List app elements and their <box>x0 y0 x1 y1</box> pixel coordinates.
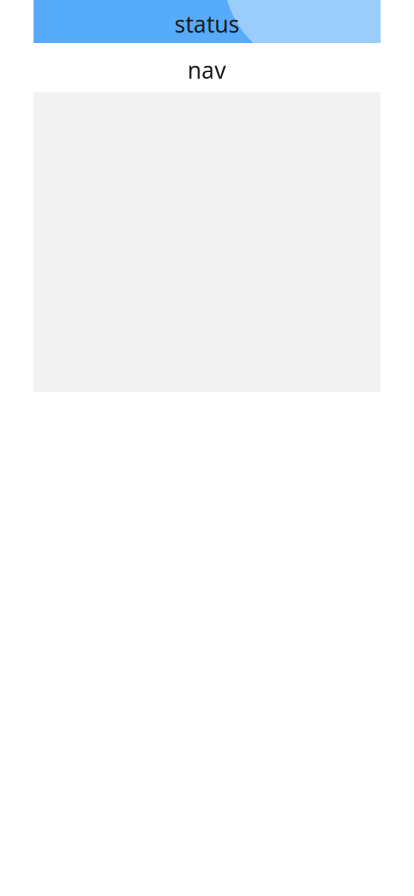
staticText: nav <box>187 55 226 85</box>
staticText: status <box>174 9 239 39</box>
